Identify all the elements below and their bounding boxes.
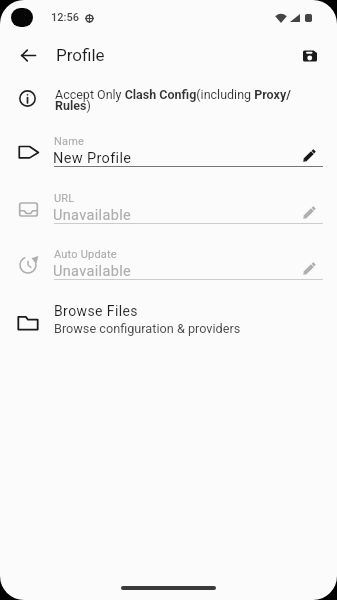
button[interactable]: Auto Update (0, 245, 337, 300)
button[interactable]: Save (291, 37, 328, 74)
staticText: Profile (56, 45, 105, 65)
staticText: 12:56 (51, 11, 79, 24)
button[interactable]: Name (0, 132, 337, 187)
button[interactable]: Accept Only Clash Config(including Proxy… (0, 82, 337, 114)
staticText: URL (54, 192, 75, 205)
staticText: Browse configuration & providers (54, 321, 241, 336)
staticText: Auto Update (54, 248, 117, 261)
staticText: Unavailable (53, 263, 132, 280)
staticText: Name (54, 135, 85, 148)
staticText: Browse Files (54, 303, 138, 319)
button[interactable]: Browse Files (0, 297, 337, 343)
staticText: Unavailable (53, 207, 132, 224)
staticText: New Profile (53, 150, 132, 167)
staticText: Accept Only Clash Config(including Proxy… (55, 87, 303, 113)
button[interactable]: URL (0, 189, 337, 244)
button[interactable]: Back (10, 37, 47, 74)
